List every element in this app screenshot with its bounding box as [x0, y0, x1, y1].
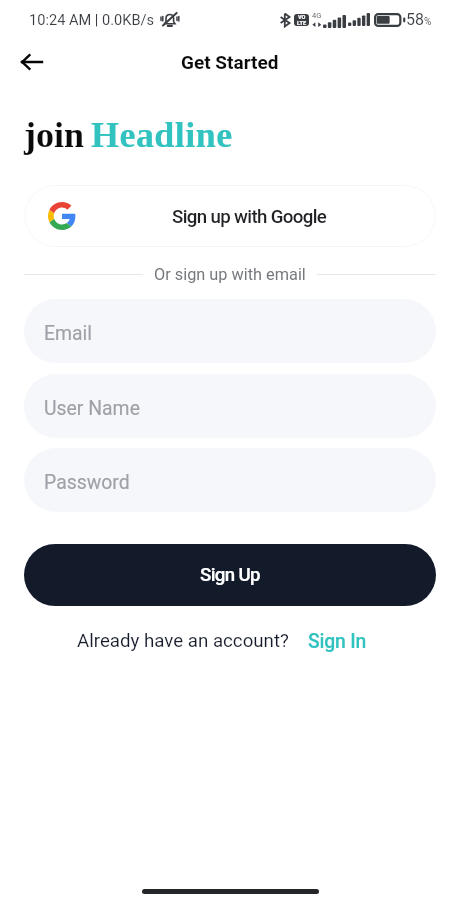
button[interactable]: Back: [10, 40, 53, 83]
button[interactable]: Sign up with Google: [24, 185, 436, 247]
staticText: Sign Up: [200, 564, 260, 586]
staticText: Sign up with Google: [172, 206, 327, 228]
staticText: LTE: [297, 20, 307, 25]
button[interactable]: Sign In: [308, 630, 367, 653]
staticText: 10:24 AM | 0.0KB/s: [29, 11, 155, 28]
button[interactable]: Email: [24, 299, 436, 363]
staticText: 4G: [312, 11, 322, 20]
staticText: User Name: [44, 397, 140, 420]
staticText: Email: [44, 322, 93, 345]
staticText: Headline: [91, 115, 233, 155]
staticText: Get Started: [181, 51, 279, 73]
staticText: Already have an account?: [77, 630, 289, 652]
button[interactable]: Sign Up: [24, 544, 436, 606]
button[interactable]: User Name: [24, 374, 436, 438]
staticText: join: [24, 115, 85, 155]
staticText: VO: [298, 14, 306, 21]
staticText: Password: [44, 471, 130, 494]
staticText: Or sign up with email: [154, 265, 306, 284]
staticText: 58: [406, 10, 424, 29]
staticText: %: [424, 16, 432, 28]
button[interactable]: Password: [24, 448, 436, 512]
staticText: Sign In: [308, 630, 367, 653]
